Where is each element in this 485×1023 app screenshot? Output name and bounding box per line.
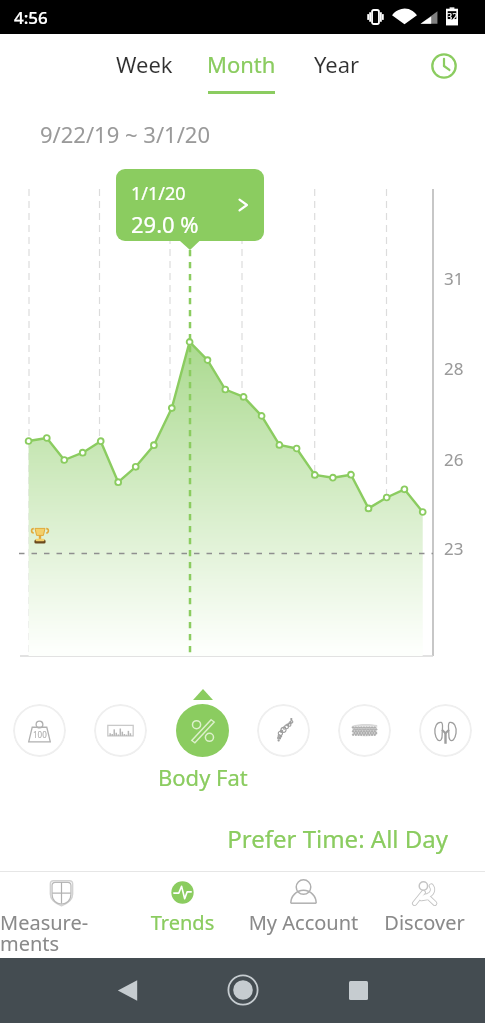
button[interactable]: Measure- ments — [0, 872, 122, 959]
staticText: 28 — [444, 357, 464, 380]
staticText: 9/22/19 ~ 3/1/20 — [40, 119, 211, 149]
staticText: Prefer Time: All Day — [0, 822, 448, 855]
button[interactable]: BMI — [94, 704, 147, 757]
button[interactable]: Recent apps — [334, 966, 382, 1014]
button[interactable]: Week — [116, 34, 173, 79]
button[interactable]: Month — [207, 34, 276, 94]
staticText: 32 — [447, 10, 458, 22]
staticText: Year — [314, 49, 360, 79]
button[interactable]: Trends — [122, 872, 243, 959]
staticText: 23 — [444, 537, 464, 560]
button[interactable]: My Account — [243, 872, 364, 959]
button[interactable]: Weight — [13, 704, 66, 757]
button[interactable]: History — [423, 45, 464, 86]
button[interactable]: Discover — [364, 872, 485, 959]
staticText: 31 — [444, 267, 464, 290]
button[interactable]: Body Fat — [176, 704, 229, 757]
staticText: Month — [207, 49, 276, 79]
button[interactable]: 1/1/20 — [116, 169, 264, 241]
button[interactable]: Muscle — [338, 704, 391, 757]
staticText: 100 — [33, 729, 47, 740]
button[interactable]: Visceral Fat — [419, 704, 472, 757]
staticText: My Account — [243, 909, 364, 936]
button[interactable]: Year — [314, 34, 360, 79]
staticText: 1/1/20 — [131, 181, 186, 206]
staticText: Week — [116, 49, 173, 79]
staticText: Body Fat — [158, 762, 248, 792]
other: Details — [236, 198, 250, 212]
button[interactable]: Home — [219, 966, 267, 1014]
staticText: Trends — [122, 909, 243, 936]
button[interactable]: Body Water — [257, 704, 310, 757]
staticText: Measure- ments — [0, 909, 122, 957]
button[interactable]: Back — [103, 966, 151, 1014]
staticText: 4:56 — [14, 6, 48, 29]
staticText: 29.0 % — [131, 209, 199, 239]
staticText: 26 — [444, 448, 464, 471]
staticText: Discover — [364, 909, 485, 936]
